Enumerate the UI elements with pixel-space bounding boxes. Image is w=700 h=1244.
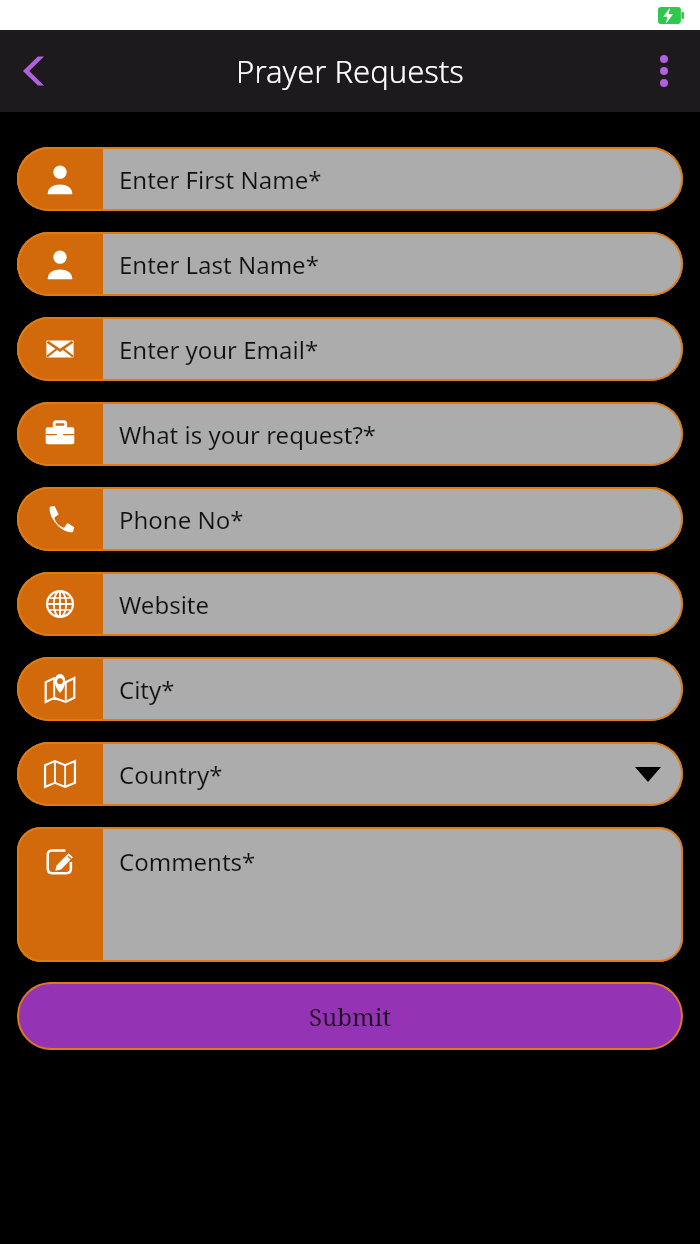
- button[interactable]: City*: [17, 657, 683, 721]
- button[interactable]: Submit: [17, 982, 683, 1050]
- button[interactable]: Website: [17, 572, 683, 636]
- button[interactable]: What is your request?*: [17, 402, 683, 466]
- staticText: Country*: [119, 758, 223, 791]
- staticText: Prayer Requests: [236, 50, 464, 92]
- button[interactable]: Phone No*: [17, 487, 683, 551]
- staticText: Enter Last Name*: [119, 248, 319, 281]
- staticText: Phone No*: [119, 503, 244, 536]
- button[interactable]: Country*: [17, 742, 683, 806]
- staticText: Website: [119, 588, 210, 621]
- button[interactable]: Enter your Email*: [17, 317, 683, 381]
- button[interactable]: Comments*: [17, 827, 683, 962]
- button[interactable]: Enter Last Name*: [17, 232, 683, 296]
- staticText: City*: [119, 673, 175, 706]
- staticText: What is your request?*: [119, 418, 377, 451]
- staticText: Enter First Name*: [119, 163, 322, 196]
- button[interactable]: Enter First Name*: [17, 147, 683, 211]
- button[interactable]: More options: [636, 43, 692, 99]
- button[interactable]: Back: [6, 43, 62, 99]
- staticText: Submit: [309, 1000, 391, 1033]
- staticText: Enter your Email*: [119, 333, 319, 366]
- staticText: Comments*: [119, 845, 256, 878]
